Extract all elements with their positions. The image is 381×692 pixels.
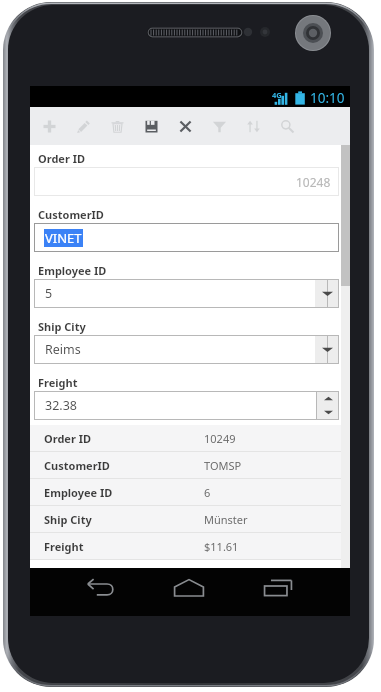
button[interactable]: Reims	[34, 335, 339, 364]
staticText: TOMSP	[204, 458, 242, 473]
button[interactable]: VINET	[34, 223, 339, 252]
staticText: 32.38	[45, 397, 316, 414]
button[interactable]: Search	[270, 107, 304, 145]
staticText: Order ID	[44, 431, 204, 446]
button[interactable]: Order ID	[30, 425, 341, 451]
staticText: Freight	[44, 539, 204, 554]
staticText: Employee ID	[38, 263, 107, 278]
button[interactable]: 10248	[34, 167, 339, 196]
button[interactable]: Sort	[236, 107, 270, 145]
other: Open dropdown	[315, 335, 339, 364]
button[interactable]: Filter	[202, 107, 236, 145]
staticText: 10248	[296, 174, 331, 190]
button[interactable]: 32.38	[34, 391, 339, 420]
staticText: $11.61	[204, 539, 239, 554]
staticText: Employee ID	[44, 485, 204, 500]
other: Open dropdown	[315, 279, 339, 308]
button[interactable]: Ship City	[30, 506, 341, 532]
staticText: CustomerID	[38, 207, 104, 222]
staticText: CustomerID	[44, 458, 204, 473]
button[interactable]: 5	[34, 279, 339, 308]
button[interactable]: Home	[159, 574, 219, 602]
staticText: Ship City	[44, 512, 204, 527]
staticText: 4G	[272, 90, 282, 100]
other: Decrement	[317, 405, 339, 420]
other: Increment	[317, 391, 339, 405]
staticText: 6	[204, 485, 211, 500]
staticText: 10249	[204, 431, 236, 446]
button[interactable]: Recents	[248, 574, 308, 602]
staticText: 5	[45, 285, 315, 302]
staticText: Order ID	[38, 151, 86, 166]
staticText: Ship City	[38, 319, 86, 334]
staticText: Reims	[45, 341, 315, 358]
button[interactable]: Delete	[100, 107, 134, 145]
button[interactable]: Edit	[66, 107, 100, 145]
button[interactable]: Add	[32, 107, 66, 145]
staticText: 10:10	[310, 89, 345, 107]
staticText: VINET	[45, 229, 82, 247]
staticText: Münster	[204, 512, 248, 527]
button[interactable]: Back	[70, 574, 130, 602]
button[interactable]: Cancel	[168, 107, 202, 145]
button[interactable]: Employee ID	[30, 479, 341, 505]
button[interactable]: CustomerID	[30, 452, 341, 478]
staticText: Freight	[38, 375, 78, 390]
button[interactable]: Save	[134, 107, 168, 145]
button[interactable]: Freight	[30, 533, 341, 559]
